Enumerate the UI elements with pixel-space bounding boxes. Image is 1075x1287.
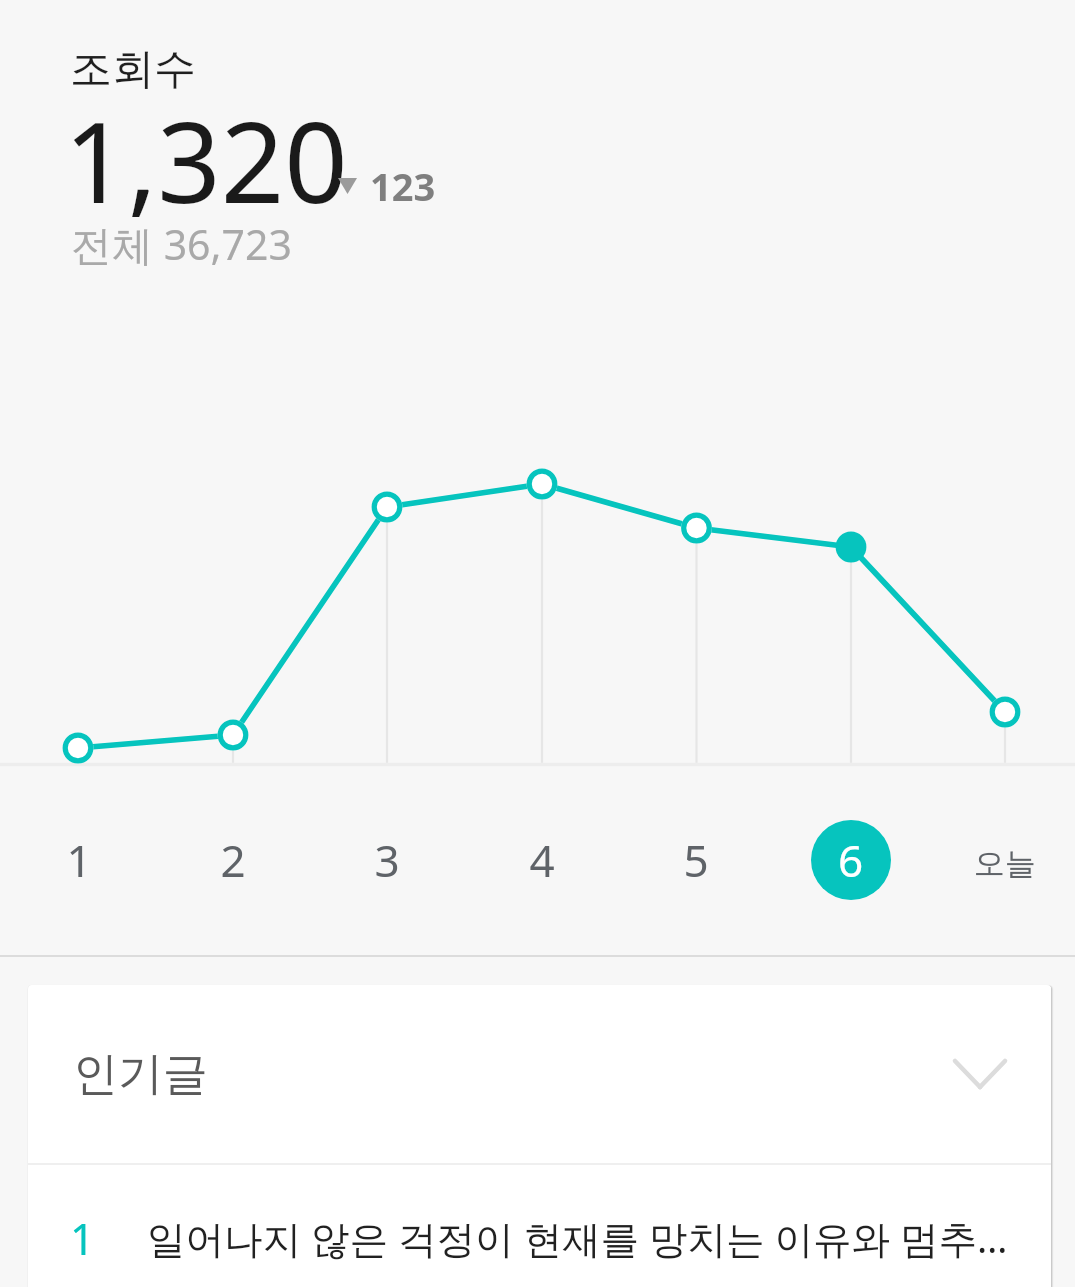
- staticText: 5: [683, 830, 709, 890]
- staticText: 6: [838, 830, 864, 890]
- staticText: 2: [220, 830, 246, 890]
- other: Daily views line chart: [0, 0, 1075, 1287]
- button[interactable]: 오늘: [955, 810, 1055, 910]
- button[interactable]: 2: [183, 810, 283, 910]
- staticText: 123: [370, 160, 436, 212]
- staticText: 1: [70, 1209, 95, 1268]
- button[interactable]: 4: [492, 810, 592, 910]
- button[interactable]: 5: [646, 810, 746, 910]
- staticText: 1,320: [64, 84, 348, 235]
- staticText: 조회수: [70, 43, 196, 96]
- button[interactable]: 1: [29, 810, 129, 910]
- button[interactable]: 인기글: [28, 985, 1051, 1163]
- staticText: 일어나지 않은 걱정이 현재를 망치는 이유와 멈추…: [147, 1212, 1008, 1265]
- staticText: 인기글: [73, 1046, 208, 1103]
- other: Decrease: [338, 178, 357, 194]
- button[interactable]: 1: [28, 1165, 1051, 1287]
- button[interactable]: 6: [801, 810, 901, 910]
- other: Collapse popular posts: [955, 1061, 1005, 1087]
- staticText: 전체 36,723: [71, 216, 292, 272]
- staticText: 3: [374, 830, 400, 890]
- staticText: 1: [66, 830, 92, 890]
- staticText: 4: [529, 830, 555, 890]
- staticText: 오늘: [974, 844, 1036, 883]
- button[interactable]: 3: [337, 810, 437, 910]
